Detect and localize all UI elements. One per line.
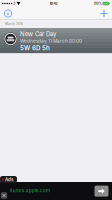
staticText: 5W 6D 5h [20,44,50,52]
staticText: Wednesday, 11 March 00:00 [20,38,82,44]
button[interactable]: Add event [96,7,112,20]
button[interactable]: Close ad [1,192,7,199]
staticText: Ads [5,177,13,182]
staticText: March 2015 [5,22,23,26]
staticText: itunes.apple.com [10,188,50,193]
button[interactable]: New Car Day [0,28,112,53]
staticText: 18:42 [50,1,58,6]
staticText: 3 [12,1,15,6]
staticText: New Car Day [20,30,56,38]
button[interactable]: Info [0,7,16,20]
button[interactable]: About these ads [0,176,17,183]
button[interactable]: Open link [94,186,108,197]
staticText: 100% [94,2,102,5]
